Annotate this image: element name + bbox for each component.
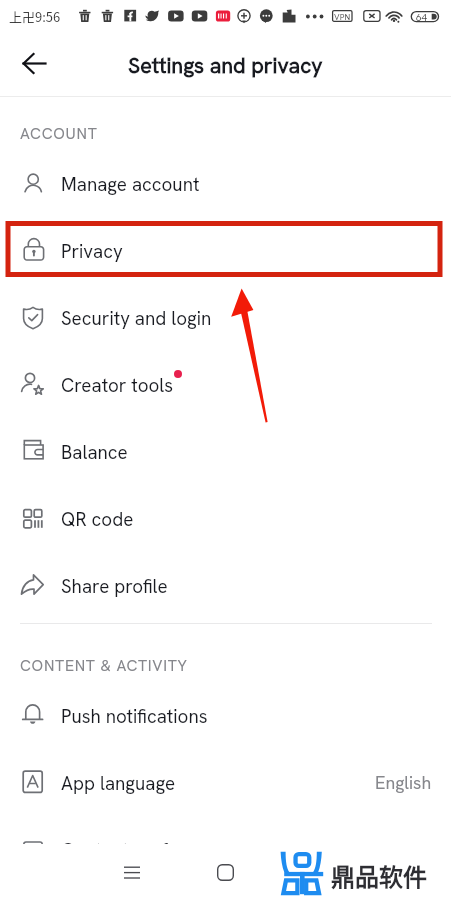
staticText: Push notifications <box>61 704 208 728</box>
staticText: Settings and privacy <box>128 51 323 79</box>
button[interactable]: QR code <box>0 485 451 552</box>
button[interactable]: Push notifications <box>0 682 451 749</box>
button[interactable]: Creator tools <box>0 351 451 418</box>
staticText: QR code <box>61 507 134 531</box>
button[interactable]: Content preferences <box>0 816 451 883</box>
staticText: App language <box>61 771 176 795</box>
staticText: CONTENT & ACTIVITY <box>20 655 188 675</box>
staticText: 上卍9:56 <box>9 7 61 26</box>
staticText: Manage account <box>61 172 200 196</box>
button[interactable]: Security and login <box>0 284 451 351</box>
staticText: Security and login <box>61 306 212 330</box>
staticText: English <box>375 771 432 794</box>
button[interactable]: App language <box>0 749 451 816</box>
staticText: Privacy <box>61 239 123 263</box>
staticText: Creator tools <box>61 373 174 397</box>
staticText: Content preferences <box>61 838 234 862</box>
staticText: ACCOUNT <box>20 123 98 143</box>
staticText: Share profile <box>61 574 168 598</box>
button[interactable]: Home <box>207 854 243 890</box>
staticText: Balance <box>61 440 128 464</box>
staticText: VPN <box>334 11 351 22</box>
button[interactable]: Privacy <box>0 217 451 284</box>
button[interactable]: Back <box>12 41 56 85</box>
staticText: 64 <box>416 11 428 24</box>
button[interactable]: Recent apps <box>113 854 150 891</box>
button[interactable]: Manage account <box>0 150 451 217</box>
staticText: 鼎品软件 <box>331 858 427 893</box>
button[interactable]: Balance <box>0 418 451 485</box>
button[interactable]: Share profile <box>0 552 451 619</box>
